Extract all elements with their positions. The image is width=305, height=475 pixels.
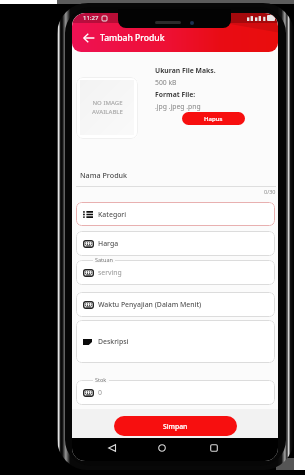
staticText: Ukuran File Maks.	[155, 66, 216, 75]
staticText: NO IMAGE AVAILABLE	[92, 99, 123, 116]
staticText: 0	[98, 388, 102, 397]
staticText: 0/30	[264, 188, 276, 195]
button[interactable]: Hapus	[182, 112, 245, 125]
staticText: serving	[98, 268, 122, 277]
staticText: Simpan	[163, 422, 188, 431]
staticText: Deskripsi	[98, 337, 129, 346]
staticText: Stok	[95, 376, 107, 383]
staticText: Hapus	[204, 115, 223, 123]
staticText: Kategori	[98, 210, 127, 219]
button[interactable]: Back	[80, 29, 98, 47]
staticText: Format File:	[155, 90, 196, 99]
staticText: 500 kB	[155, 78, 177, 87]
button[interactable]: Deskripsi	[76, 320, 275, 363]
staticText: Nama Produk	[80, 170, 128, 180]
staticText: Satuan	[95, 256, 113, 263]
button[interactable]: serving	[76, 260, 275, 285]
button[interactable]: 0	[76, 380, 275, 405]
button[interactable]: Recents	[204, 438, 224, 458]
button[interactable]: Simpan	[114, 416, 237, 436]
staticText: .jpg .jpeg .png	[155, 102, 201, 111]
button[interactable]: NO IMAGE AVAILABLE	[76, 77, 138, 139]
staticText: Harga	[98, 239, 119, 248]
staticText: Waktu Penyajian (Dalam Menit)	[98, 300, 202, 309]
button[interactable]: Back	[102, 438, 122, 458]
button[interactable]: Home	[152, 438, 172, 458]
staticText: 11:27	[83, 14, 99, 22]
button[interactable]: Waktu Penyajian (Dalam Menit)	[76, 292, 275, 317]
button[interactable]: Kategori	[76, 202, 275, 226]
button[interactable]: Harga	[76, 231, 275, 256]
staticText: Tambah Produk	[100, 32, 165, 44]
